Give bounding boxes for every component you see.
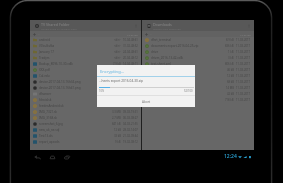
staticText: 11-03-2017 bbox=[236, 98, 251, 102]
button[interactable]: test-sheet.xml bbox=[142, 61, 254, 67]
button[interactable]: report-04-2016.pdf bbox=[142, 85, 254, 91]
button[interactable]: Backup_8096-10-30.vdlk bbox=[30, 61, 141, 67]
staticText: 7.9 kB bbox=[113, 62, 121, 66]
staticText: <dir> bbox=[114, 38, 121, 42]
staticText: <dir> bbox=[114, 56, 121, 60]
staticText: report-04-2016.pdf bbox=[151, 86, 178, 90]
staticText: dfsancer bbox=[39, 92, 52, 96]
staticText: documents export-2016-04-25.zip bbox=[151, 44, 199, 48]
button[interactable]: January 17 bbox=[30, 49, 141, 55]
staticText: IMG_3168.sk bbox=[39, 116, 57, 120]
staticText: Tradyrs bbox=[39, 56, 50, 60]
staticText: 04-04-18:47 bbox=[123, 80, 138, 84]
staticText: Test13.xls bbox=[39, 134, 53, 138]
staticText: 10% bbox=[99, 89, 105, 93]
staticText: 10-04-18:21 bbox=[123, 74, 138, 78]
staticText: device-2017-04-13-16h34.png bbox=[39, 80, 81, 84]
staticText: 11-03-2017 bbox=[236, 68, 251, 72]
staticText: Internal card Download bbox=[153, 27, 181, 30]
button[interactable]: drive bbox=[142, 49, 254, 55]
button[interactable]: Home bbox=[47, 152, 57, 162]
button[interactable]: video_clip.mp4 bbox=[142, 97, 254, 103]
staticText: IMG_7321.sk bbox=[39, 110, 57, 114]
staticText: fdroid.sk bbox=[39, 98, 52, 102]
staticText: 12-04 am bbox=[240, 33, 251, 36]
staticText: 836 kB bbox=[225, 44, 234, 48]
button[interactable]: android bbox=[30, 37, 141, 43]
staticText: 8.4 kB bbox=[113, 74, 121, 78]
staticText: new_uk_ne.sql bbox=[39, 128, 60, 132]
staticText: 11-03-2017 bbox=[236, 62, 251, 66]
button[interactable]: out_backup.bin bbox=[142, 79, 254, 85]
staticText: 19-02-08:12 bbox=[123, 140, 138, 144]
staticText: XXX.pdf bbox=[39, 68, 50, 72]
button[interactable]: Recents bbox=[62, 152, 72, 162]
staticText: 14-04-48:11 bbox=[123, 62, 138, 66]
button[interactable]: Abort bbox=[97, 96, 195, 107]
staticText: 11-03-2017 bbox=[236, 56, 251, 60]
staticText: Cal.edu bbox=[39, 74, 50, 78]
staticText: device-2017-04-13-16h41.png bbox=[39, 86, 81, 90]
staticText: 11-03-2017 bbox=[236, 80, 251, 84]
staticText: 3.3 MB bbox=[112, 110, 121, 114]
button[interactable]: IMG_7321.sk bbox=[30, 109, 141, 115]
staticText: January 17 bbox=[39, 50, 54, 54]
staticText: 21-03-12:19 bbox=[123, 92, 138, 96]
button[interactable]: feeder.Android.sk bbox=[30, 103, 141, 109]
staticText: 1.1 MB bbox=[112, 104, 121, 108]
button[interactable]: sched.txt bbox=[142, 91, 254, 97]
staticText: 110 kB bbox=[112, 80, 121, 84]
staticText: 11-03-2017 bbox=[236, 92, 251, 96]
button[interactable]: TV Shared Folder bbox=[30, 20, 141, 31]
staticText: <dir> bbox=[114, 50, 121, 54]
staticText: 12-04 am bbox=[127, 33, 138, 36]
staticText: drives_2016-13-42.vdlk bbox=[151, 56, 184, 60]
staticText: 806 kB bbox=[225, 62, 234, 66]
staticText: 3 kB bbox=[228, 56, 234, 60]
button[interactable]: screenshot_6.jpg bbox=[30, 121, 141, 127]
staticText: android bbox=[39, 38, 50, 42]
button[interactable]: Cal.edu bbox=[30, 73, 141, 79]
button[interactable]: documents export-2016-04-25.zip bbox=[142, 43, 254, 49]
staticText: 24-04-48:61 bbox=[123, 50, 138, 54]
staticText: VI bulkvlka bbox=[39, 44, 55, 48]
button[interactable]: dfsrt_terminal bbox=[142, 37, 254, 43]
staticText: screenshot_6.jpg bbox=[39, 122, 63, 126]
staticText: 20-04-48:12 bbox=[123, 56, 138, 60]
button[interactable]: XXX.pdf bbox=[30, 67, 141, 73]
button[interactable]: Tradyrs bbox=[30, 55, 141, 61]
staticText: 11-03-2017 bbox=[236, 50, 251, 54]
button[interactable]: report_apr.ods bbox=[30, 139, 141, 145]
staticText: 1 kB bbox=[228, 50, 234, 54]
button[interactable]: VI bulkvlka bbox=[30, 43, 141, 49]
staticText: Google Drive TV Shared Folder bbox=[41, 27, 77, 30]
button[interactable]: Downloads bbox=[142, 20, 254, 31]
button[interactable]: fdroid.sk bbox=[30, 97, 141, 103]
staticText: 11-03-2017 bbox=[236, 86, 251, 90]
button[interactable]: IMG_3168.sk bbox=[30, 115, 141, 121]
staticText: 10-04-48:61 bbox=[123, 38, 138, 42]
staticText: 52/100 bbox=[184, 89, 193, 93]
staticText: 14 MB bbox=[226, 86, 234, 90]
button[interactable]: notes-2016-12.zip bbox=[142, 73, 254, 79]
button[interactable]: new_uk_ne.sql bbox=[30, 127, 141, 133]
staticText: 9 kB bbox=[115, 140, 121, 144]
staticText: 11-03-2017 bbox=[236, 44, 251, 48]
staticText: 8.9 kB bbox=[226, 38, 234, 42]
staticText: 841 kB bbox=[112, 122, 121, 126]
button[interactable]: drives_2016-13-42.vdlk bbox=[142, 55, 254, 61]
staticText: 2.8 kB bbox=[113, 92, 121, 96]
staticText: 33 kB bbox=[114, 134, 121, 138]
button[interactable]: dfsancer bbox=[30, 91, 141, 97]
button[interactable]: device-2017-04-13-16h34.png bbox=[30, 79, 141, 85]
staticText: 12 kB bbox=[114, 128, 121, 132]
button[interactable]: keeper_store.png bbox=[142, 67, 254, 73]
button[interactable]: Back bbox=[32, 152, 42, 162]
button[interactable]: device-2017-04-13-16h41.png bbox=[30, 85, 141, 91]
staticText: 12-03-10:44 bbox=[123, 104, 138, 108]
button[interactable]: Test13.xls bbox=[30, 133, 141, 139]
